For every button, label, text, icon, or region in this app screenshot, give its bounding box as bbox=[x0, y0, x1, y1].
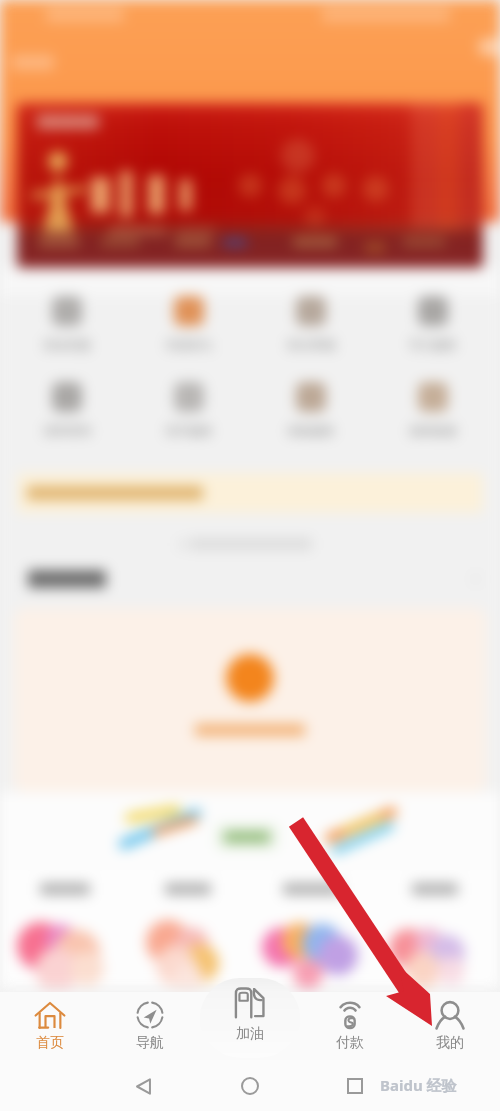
button[interactable]: 保险服务 bbox=[256, 382, 366, 438]
staticText: 我的 bbox=[436, 1034, 464, 1052]
staticText: 加油 bbox=[236, 1025, 264, 1043]
staticText: 首页 bbox=[36, 1034, 64, 1052]
staticText: 积分商城 bbox=[287, 337, 335, 352]
button[interactable]: 导航 bbox=[100, 992, 200, 1060]
button[interactable] bbox=[376, 870, 494, 983]
button[interactable] bbox=[14, 608, 486, 792]
button[interactable] bbox=[17, 103, 483, 268]
staticText: 车主服务 bbox=[409, 337, 457, 352]
button[interactable]: 付款 bbox=[300, 992, 400, 1060]
staticText: 保险服务 bbox=[287, 423, 335, 438]
staticText: 道路救援 bbox=[409, 423, 457, 438]
staticText: Baidu 经验 bbox=[380, 1075, 457, 1095]
staticText: 付款 bbox=[336, 1034, 364, 1052]
staticText: 导航 bbox=[136, 1034, 164, 1052]
button[interactable] bbox=[6, 870, 124, 983]
button[interactable] bbox=[216, 824, 278, 850]
button[interactable] bbox=[17, 473, 483, 513]
button[interactable]: 洗车服务 bbox=[134, 382, 244, 438]
button[interactable]: Back bbox=[123, 1066, 163, 1106]
button[interactable]: 道路救援 bbox=[378, 382, 488, 438]
button[interactable] bbox=[129, 870, 247, 983]
button[interactable]: 首页 bbox=[0, 992, 100, 1060]
staticText: 洗车服务 bbox=[165, 423, 213, 438]
button[interactable] bbox=[0, 558, 500, 602]
button[interactable]: 加油优惠 bbox=[12, 296, 122, 352]
button[interactable]: Recents bbox=[335, 1066, 375, 1106]
staticText: 加油优惠 bbox=[43, 337, 91, 352]
button[interactable]: 加油 bbox=[200, 978, 300, 1058]
button[interactable] bbox=[253, 870, 371, 983]
staticText: 违章查询 bbox=[43, 423, 91, 438]
button[interactable]: 充值有礼 bbox=[134, 296, 244, 352]
button[interactable]: 车主服务 bbox=[378, 296, 488, 352]
button[interactable]: 积分商城 bbox=[256, 296, 366, 352]
button[interactable]: 我的 bbox=[400, 992, 500, 1060]
staticText: 充值有礼 bbox=[165, 337, 213, 352]
button[interactable]: Home bbox=[230, 1066, 270, 1106]
button[interactable]: 违章查询 bbox=[12, 382, 122, 438]
